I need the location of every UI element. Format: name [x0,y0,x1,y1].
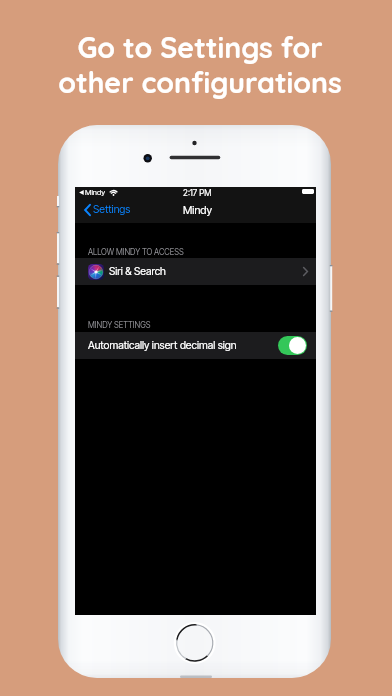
staticText: 2:17 PM [183,188,212,198]
staticText: Go to Settings for other configurations [8,29,392,101]
staticText: Mindy [85,188,106,197]
staticText: ALLOW MINDY TO ACCESS [88,247,184,257]
button[interactable]: Automatically insert decimal sign, on [278,336,307,355]
button[interactable]: Siri & Search [75,258,316,285]
button[interactable]: Settings [84,202,135,217]
staticText: Siri & Search [109,265,166,278]
staticText: Automatically insert decimal sign [88,339,237,352]
staticText: Settings [93,203,131,216]
button[interactable]: Automatically insert decimal sign [75,332,316,359]
staticText: MINDY SETTINGS [88,320,151,330]
staticText: Mindy [183,203,213,216]
